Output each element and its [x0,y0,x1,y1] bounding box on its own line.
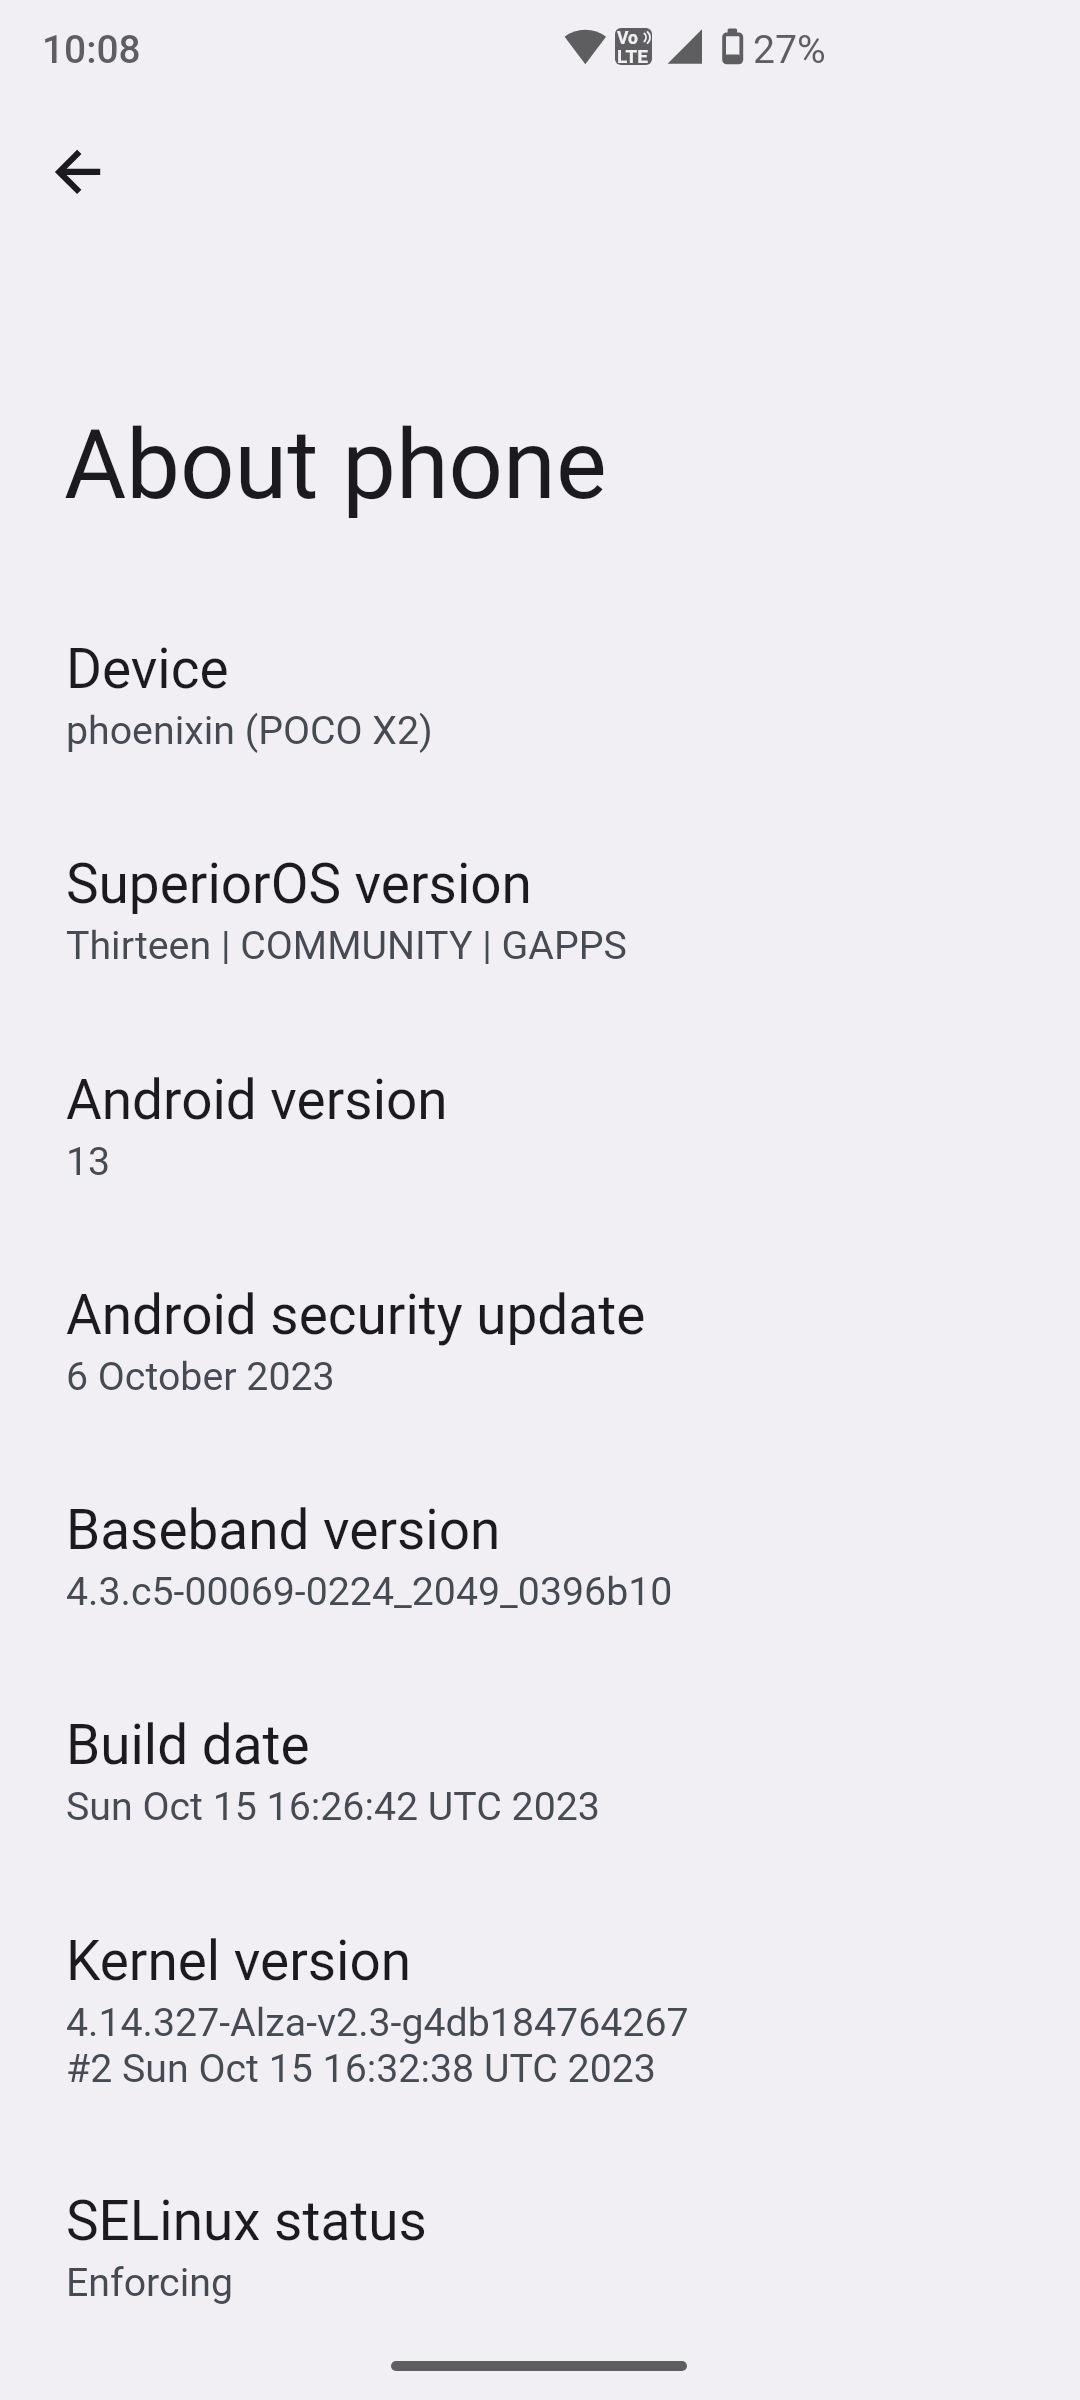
staticText: #2 Sun Oct 15 16:32:38 UTC 2023 [66,2046,656,2092]
staticText: 4.3.c5-00069-0224_2049_0396b10 [66,1569,673,1615]
staticText: 6 October 2023 [66,1354,335,1400]
button[interactable]: Device [0,603,1080,778]
button[interactable]: Baseband version [0,1464,1080,1639]
staticText: Sun Oct 15 16:26:42 UTC 2023 [66,1784,600,1830]
staticText: Enforcing [66,2260,233,2306]
staticText: SELinux status [66,2189,427,2253]
staticText: 4.14.327-Alza-v2.3-g4db184764267 [66,2000,689,2046]
staticText: Thirteen | COMMUNITY | GAPPS [66,923,627,969]
staticText: 27% [753,27,826,73]
staticText: Kernel version [66,1929,412,1993]
button[interactable]: Kernel version [0,1895,1080,2117]
button[interactable]: Android version [0,1034,1080,1209]
button[interactable]: Android security update [0,1249,1080,1424]
button[interactable]: Build date [0,1679,1080,1854]
staticText: 10:08 [42,27,141,73]
staticText: Build date [66,1713,310,1777]
staticText: SuperiorOS version [66,852,532,916]
staticText: Baseband version [66,1498,501,1562]
staticText: Android version [66,1068,448,1132]
button[interactable]: Back [22,117,132,227]
staticText: Vo [617,28,638,49]
staticText: phoenixin (POCO X2) [66,708,433,754]
button[interactable]: SuperiorOS version [0,818,1080,993]
staticText: Device [66,637,229,701]
staticText: About phone [64,409,607,521]
staticText: 13 [66,1139,111,1185]
staticText: LTE [617,45,648,65]
button[interactable]: SELinux status [0,2155,1080,2330]
staticText: Android security update [66,1283,646,1347]
